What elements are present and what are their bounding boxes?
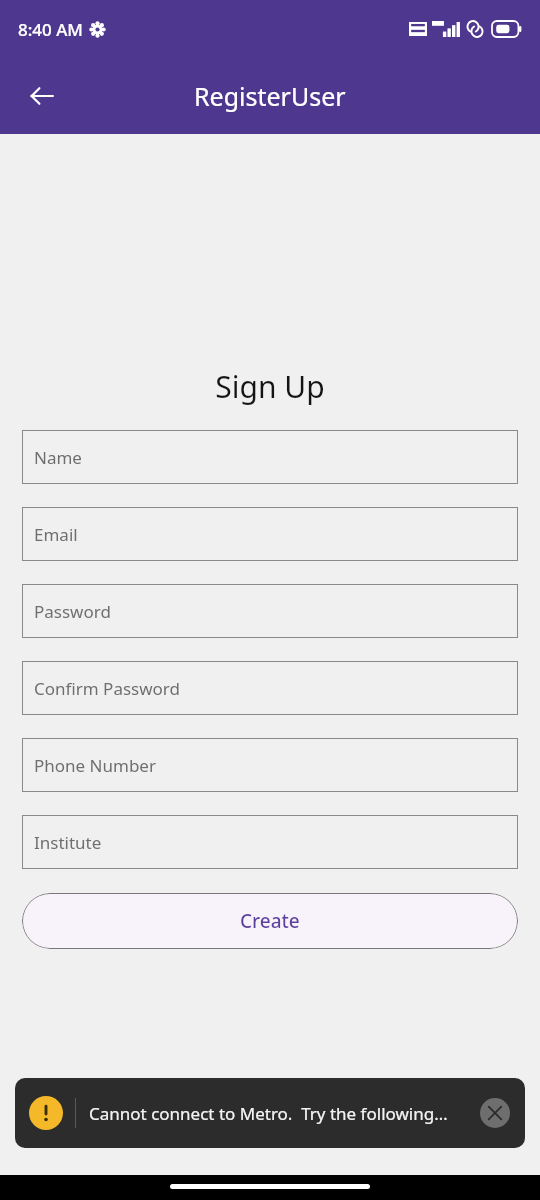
- staticText: Sign Up: [0, 366, 540, 407]
- staticText: Password: [34, 600, 111, 623]
- button[interactable]: Cannot connect to Metro. Try the followi…: [15, 1078, 525, 1148]
- button[interactable]: Confirm Password: [22, 661, 518, 715]
- staticText: Confirm Password: [34, 677, 180, 700]
- button[interactable]: Create: [22, 893, 518, 949]
- staticText: Create: [240, 908, 300, 934]
- staticText: RegisterUser: [194, 79, 346, 113]
- staticText: Cannot connect to Metro. Try the followi…: [89, 1102, 471, 1125]
- button[interactable]: Institute: [22, 815, 518, 869]
- staticText: 8:40 AM: [18, 18, 83, 41]
- button[interactable]: Back: [14, 68, 70, 124]
- staticText: Institute: [34, 831, 102, 854]
- staticText: Phone Number: [34, 754, 156, 777]
- staticText: Name: [34, 446, 82, 469]
- button[interactable]: Email: [22, 507, 518, 561]
- button[interactable]: Name: [22, 430, 518, 484]
- button[interactable]: Dismiss: [479, 1097, 511, 1129]
- staticText: Email: [34, 523, 78, 546]
- button[interactable]: Phone Number: [22, 738, 518, 792]
- button[interactable]: Password: [22, 584, 518, 638]
